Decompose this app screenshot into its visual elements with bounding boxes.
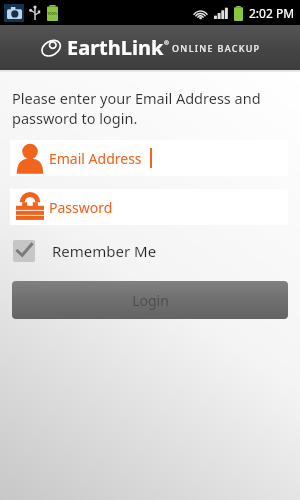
staticText: 2:02 PM (249, 5, 295, 21)
staticText: Remember Me (52, 241, 157, 261)
button[interactable]: Password (10, 189, 288, 225)
staticText: Password (49, 198, 113, 217)
staticText: 100% (47, 11, 58, 16)
button[interactable]: Email Address (10, 140, 288, 176)
staticText: EarthLink (67, 34, 164, 61)
button[interactable]: Remember Me (13, 240, 157, 262)
other: EarthLink logo (40, 36, 62, 60)
staticText: Email Address (49, 149, 142, 168)
staticText: Please enter your Email Address and pass… (12, 88, 261, 129)
button[interactable]: Login (12, 281, 288, 319)
staticText: ® (164, 39, 169, 47)
staticText: ONLINE BACKUP (172, 42, 261, 54)
staticText: Login (132, 291, 169, 310)
